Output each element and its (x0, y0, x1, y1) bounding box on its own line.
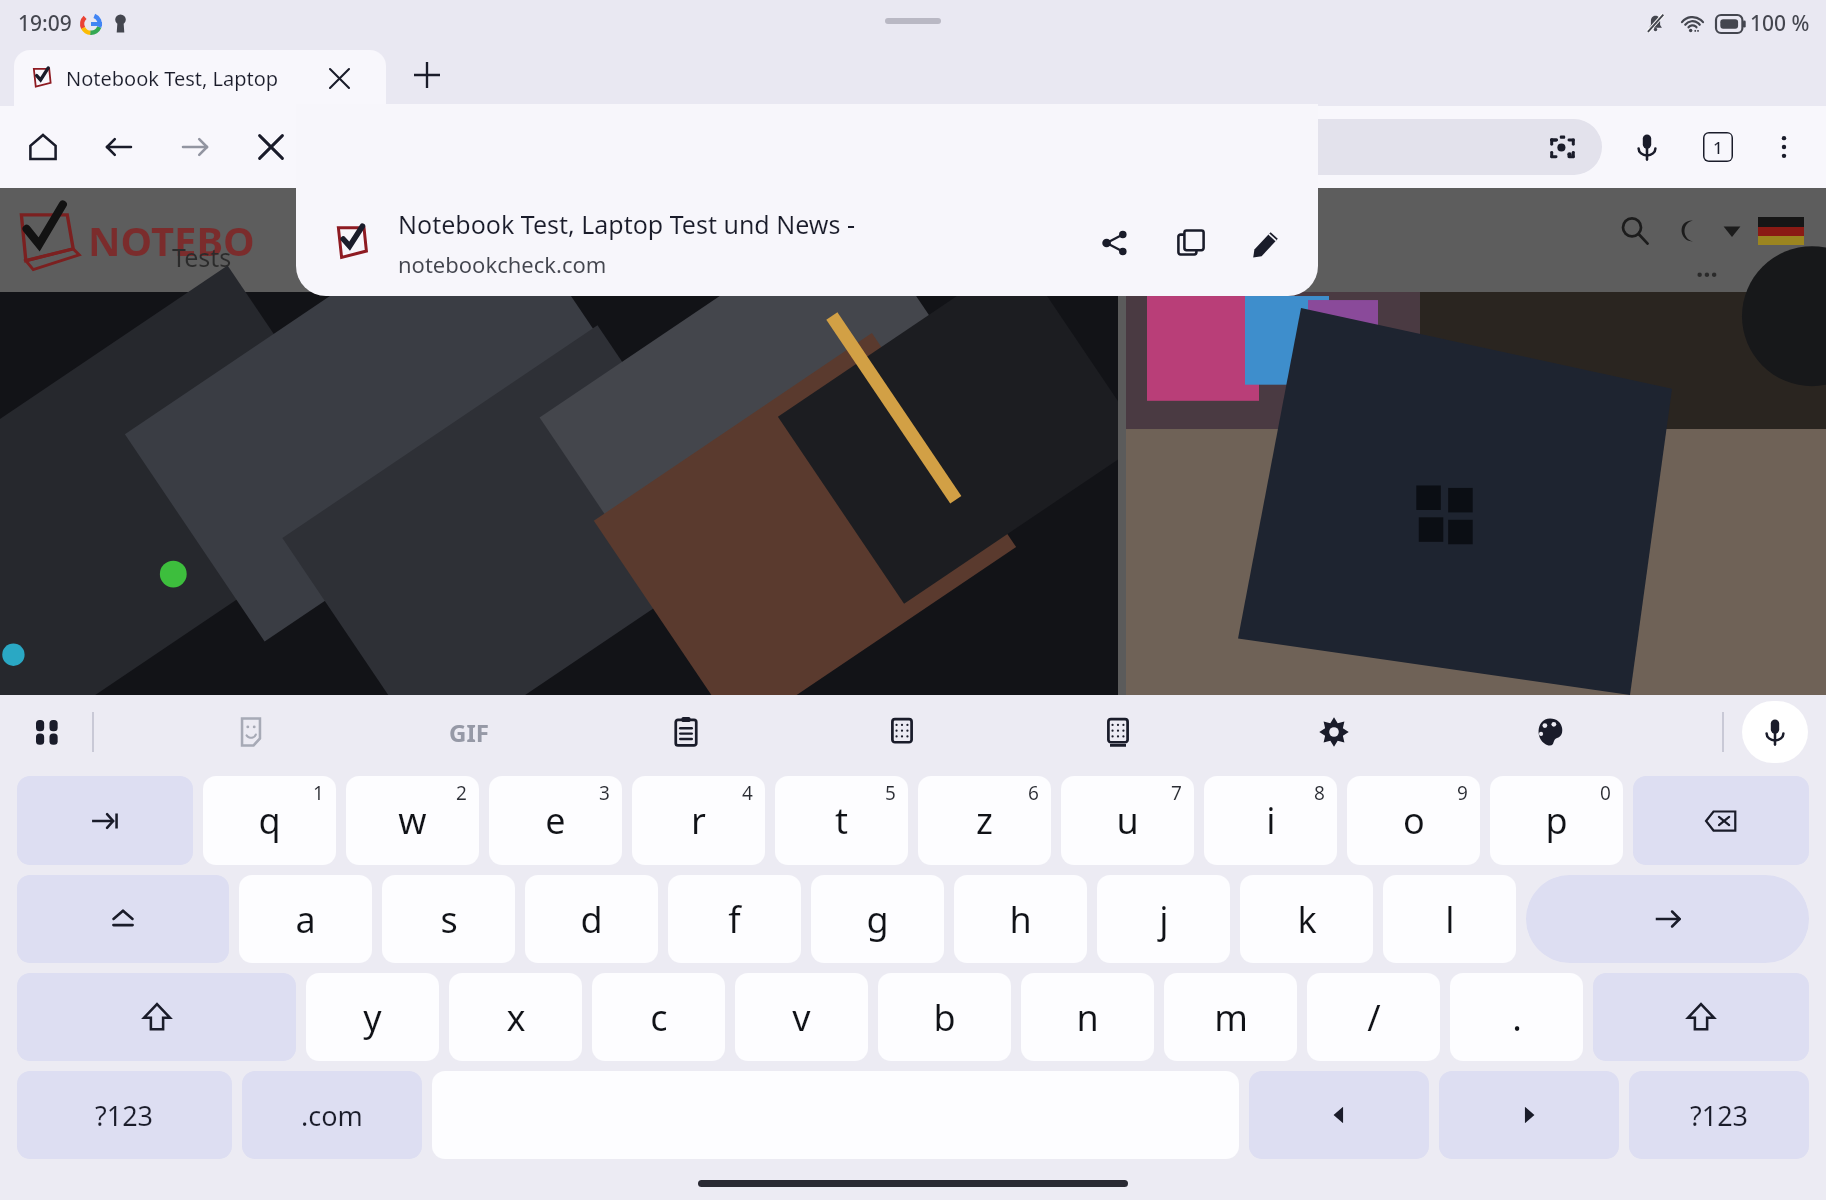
staticText: u (1116, 796, 1139, 845)
button[interactable]: Tabs (1696, 125, 1740, 169)
button[interactable]: Forward (172, 124, 218, 170)
button[interactable]: Enter (1526, 875, 1809, 963)
button[interactable]: m (1164, 973, 1297, 1061)
button[interactable]: e (489, 776, 622, 865)
button[interactable]: Stop loading (248, 124, 294, 170)
button[interactable]: Shift (1593, 973, 1809, 1061)
button[interactable]: Themes (1521, 703, 1579, 761)
button[interactable]: Move cursor right (1439, 1071, 1619, 1159)
button[interactable]: q (203, 776, 336, 865)
staticText: ... (1696, 249, 1718, 284)
staticText: 8 (1314, 780, 1325, 806)
button[interactable]: z (918, 776, 1051, 865)
staticText: m (1214, 993, 1248, 1042)
staticText: 0 (1600, 780, 1611, 806)
button[interactable]: Suchen oder URL eingeben (316, 119, 1602, 175)
button[interactable]: w (346, 776, 479, 865)
button[interactable]: s (382, 875, 515, 963)
staticText: Tests (172, 240, 232, 274)
button[interactable]: x (449, 973, 582, 1061)
staticText: 100 % (1750, 9, 1810, 38)
staticText: f (728, 895, 741, 944)
button[interactable]: Voice input (1742, 701, 1808, 763)
button[interactable]: Notebook Test, Laptop Test und News - No… (296, 104, 1318, 296)
staticText: r (691, 796, 706, 845)
button[interactable]: f (668, 875, 801, 963)
staticText: v (792, 993, 811, 1042)
staticText: i (1266, 796, 1276, 845)
button[interactable]: ?123 (1629, 1071, 1809, 1159)
staticText: a (295, 895, 316, 944)
staticText: .com (301, 1097, 363, 1134)
button[interactable]: h (954, 875, 1087, 963)
staticText: 7 (1171, 780, 1182, 806)
button[interactable]: p (1490, 776, 1623, 865)
button[interactable]: ?123 (17, 1071, 232, 1159)
button[interactable]: Backspace (1633, 776, 1809, 865)
button[interactable]: y (306, 973, 439, 1061)
button[interactable]: g (811, 875, 944, 963)
button[interactable]: GIF (439, 706, 499, 759)
staticText: x (506, 993, 526, 1042)
button[interactable]: n (1021, 973, 1154, 1061)
staticText: w (398, 796, 427, 845)
staticText: . (1512, 993, 1522, 1042)
button[interactable]: a (239, 875, 372, 963)
staticText: 1 (313, 780, 324, 806)
button[interactable]: t (775, 776, 908, 865)
button[interactable]: Notebook Test, Laptop Test (14, 50, 386, 106)
button[interactable]: k (1240, 875, 1373, 963)
button[interactable]: Share (1088, 216, 1142, 270)
button[interactable]: Copy (1164, 216, 1218, 270)
button[interactable]: Move cursor left (1249, 1071, 1429, 1159)
staticText: z (976, 796, 993, 845)
button[interactable]: d (525, 875, 658, 963)
button[interactable]: . (1450, 973, 1583, 1061)
button[interactable]: o (1347, 776, 1480, 865)
staticText: Notebook Test, Laptop Test und News - No… (398, 207, 1076, 241)
staticText: ?123 (1690, 1097, 1749, 1134)
button[interactable]: One-handed mode (873, 703, 931, 761)
staticText: NOTEBO (88, 213, 255, 267)
button[interactable]: l (1383, 875, 1516, 963)
staticText: t (835, 796, 848, 845)
staticText: l (1445, 895, 1455, 944)
button[interactable]: .com (242, 1071, 422, 1159)
button[interactable]: Settings (1305, 703, 1363, 761)
button[interactable]: Stickers (222, 703, 280, 761)
staticText: / (1367, 993, 1381, 1042)
button[interactable]: j (1097, 875, 1230, 963)
button[interactable]: Clipboard (657, 703, 715, 761)
button[interactable]: Keyboard menu (18, 702, 78, 762)
button[interactable]: Back (96, 124, 142, 170)
button[interactable] (17, 776, 193, 865)
button[interactable]: b (878, 973, 1011, 1061)
button[interactable]: v (735, 973, 868, 1061)
staticText: k (1297, 895, 1317, 944)
button[interactable]: Caps lock (17, 875, 229, 963)
button[interactable]: r (632, 776, 765, 865)
button[interactable]: Keyboard layout (1089, 703, 1147, 761)
staticText: g (866, 895, 889, 944)
button[interactable]: Edit (1240, 216, 1294, 270)
button[interactable]: u (1061, 776, 1194, 865)
staticText: y (363, 993, 382, 1042)
staticText: 6 (1028, 780, 1039, 806)
staticText: q (258, 796, 281, 845)
button[interactable]: c (592, 973, 725, 1061)
button[interactable]: New tab (406, 54, 448, 96)
button[interactable]: / (1307, 973, 1440, 1061)
staticText: o (1403, 796, 1425, 845)
button[interactable]: Home (20, 124, 66, 170)
staticText: 5 (885, 780, 896, 806)
button[interactable]: i (1204, 776, 1337, 865)
staticText: Notebook Test, Laptop Test (66, 65, 316, 92)
button[interactable]: More options (1762, 125, 1806, 169)
button[interactable]: Voice search (1624, 124, 1670, 170)
button[interactable]: Close tab (322, 61, 356, 95)
staticText: p (1545, 796, 1568, 845)
button[interactable]: Shift (17, 973, 296, 1061)
button[interactable]: Search with camera (1542, 127, 1582, 167)
